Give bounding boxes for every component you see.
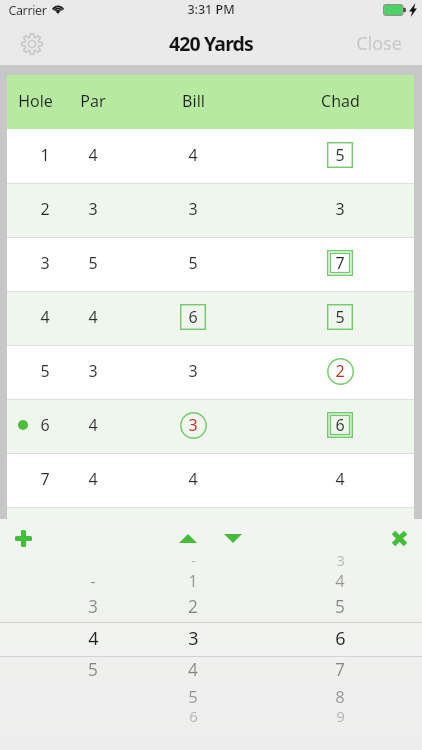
- staticText: 3:31 PM: [187, 1, 235, 18]
- button[interactable]: 7: [7, 453, 414, 507]
- staticText: 5: [88, 252, 98, 274]
- staticText: 6: [335, 414, 345, 436]
- staticText: 3: [88, 360, 98, 382]
- staticText: 3: [40, 252, 50, 274]
- staticText: 4: [88, 626, 99, 651]
- staticText: 4: [188, 658, 198, 682]
- staticText: 5: [188, 252, 198, 274]
- staticText: 6: [188, 306, 198, 328]
- staticText: -: [191, 550, 196, 571]
- staticText: 4: [88, 414, 98, 436]
- staticText: 2: [188, 595, 198, 619]
- staticText: 5: [40, 360, 50, 382]
- button[interactable]: 6: [7, 399, 414, 453]
- staticText: 3: [188, 414, 198, 436]
- staticText: 5: [88, 658, 98, 682]
- staticText: 4: [40, 306, 50, 328]
- staticText: Bill: [182, 90, 205, 112]
- staticText: 7: [40, 468, 50, 490]
- button[interactable]: 5: [7, 345, 414, 399]
- staticText: 3: [188, 360, 198, 382]
- button[interactable]: Hole: [7, 75, 414, 129]
- staticText: 2: [40, 198, 50, 220]
- staticText: 4: [188, 144, 198, 166]
- staticText: 4: [335, 569, 345, 592]
- staticText: Chad: [321, 90, 360, 112]
- staticText: 3: [335, 198, 345, 220]
- staticText: Hole: [18, 90, 53, 112]
- staticText: 6: [335, 626, 346, 651]
- staticText: 4: [88, 144, 98, 166]
- staticText: Par: [80, 90, 106, 112]
- staticText: 3: [88, 198, 98, 220]
- staticText: 6: [189, 706, 198, 727]
- staticText: 6: [40, 414, 50, 436]
- staticText: 3: [88, 595, 98, 619]
- staticText: -: [90, 569, 96, 592]
- button[interactable]: Close picker: [384, 523, 414, 553]
- staticText: 8: [335, 685, 345, 708]
- button[interactable]: [7, 507, 414, 519]
- staticText: 1: [40, 144, 50, 166]
- staticText: 5: [335, 144, 345, 166]
- staticText: Carrier: [8, 2, 47, 19]
- button[interactable]: 2: [7, 183, 414, 237]
- button[interactable]: 4: [7, 291, 414, 345]
- button[interactable]: 1: [7, 129, 414, 183]
- staticText: 7: [335, 658, 345, 682]
- staticText: 1: [188, 569, 198, 592]
- staticText: 3: [188, 626, 199, 651]
- staticText: 3: [188, 198, 198, 220]
- button[interactable]: 3: [7, 237, 414, 291]
- staticText: 4: [88, 468, 98, 490]
- staticText: 5: [335, 595, 345, 619]
- button[interactable]: Next: [217, 524, 249, 552]
- staticText: 420 Yards: [169, 30, 253, 57]
- button[interactable]: Previous: [172, 524, 204, 552]
- staticText: 4: [88, 306, 98, 328]
- staticText: 3: [336, 550, 345, 571]
- button[interactable]: Add score: [8, 523, 38, 553]
- staticText: 4: [188, 468, 198, 490]
- staticText: 5: [335, 306, 345, 328]
- button[interactable]: Close: [356, 31, 402, 56]
- staticText: 4: [335, 468, 345, 490]
- staticText: Close: [356, 31, 402, 56]
- staticText: 5: [188, 685, 198, 708]
- staticText: 9: [336, 706, 345, 727]
- button[interactable]: Settings: [17, 29, 47, 59]
- staticText: 7: [335, 252, 345, 274]
- staticText: 2: [335, 360, 345, 382]
